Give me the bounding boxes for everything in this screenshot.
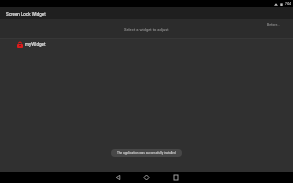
- staticText: The application was successfully install…: [117, 151, 176, 155]
- button[interactable]: Recent apps: [161, 172, 190, 183]
- staticText: myWidget: [25, 42, 46, 47]
- staticText: Before...: [267, 23, 281, 27]
- button[interactable]: Back: [103, 172, 132, 183]
- button[interactable]: Home: [132, 172, 161, 183]
- staticText: Screen Lock Widget: [6, 12, 46, 17]
- button[interactable]: Before...: [265, 22, 283, 28]
- staticText: 7:04: [285, 2, 291, 6]
- staticText: Select a widget to adjust: [124, 27, 169, 32]
- button[interactable]: myWidget: [0, 39, 293, 50]
